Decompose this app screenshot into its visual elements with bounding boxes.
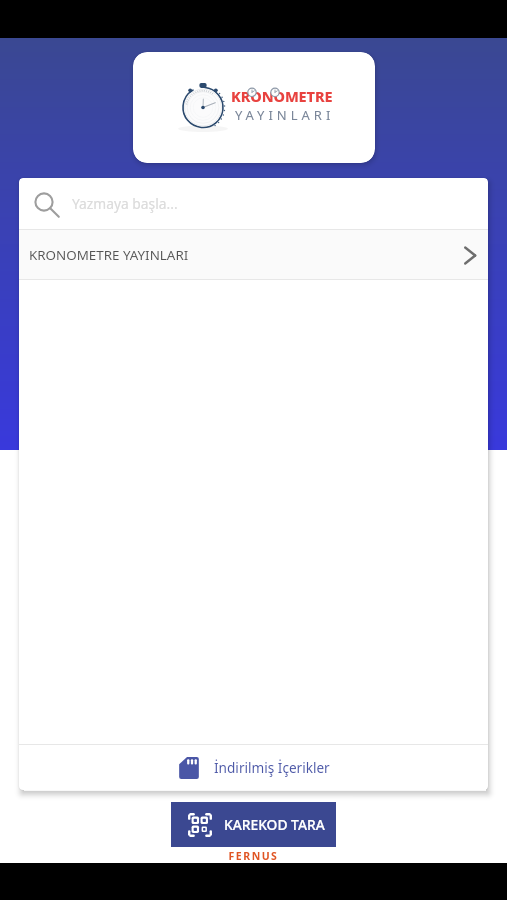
staticText: KAREKOD TARA xyxy=(224,815,325,834)
button[interactable]: KRONOMETRE YAYINLARI xyxy=(19,230,488,279)
staticText: FERNUS xyxy=(0,849,507,863)
staticText: İndirilmiş İçerikler xyxy=(214,758,330,777)
button[interactable]: KAREKOD TARA xyxy=(171,802,336,847)
button[interactable]: Arama alanı xyxy=(19,178,488,229)
staticText: YAYINLARI xyxy=(235,106,335,124)
button[interactable]: İndirilmiş İçerikler xyxy=(19,745,488,790)
staticText: KRONOMETRE xyxy=(231,86,333,106)
staticText: Yazmaya başla... xyxy=(72,194,178,213)
staticText: KRONOMETRE YAYINLARI xyxy=(29,246,189,264)
